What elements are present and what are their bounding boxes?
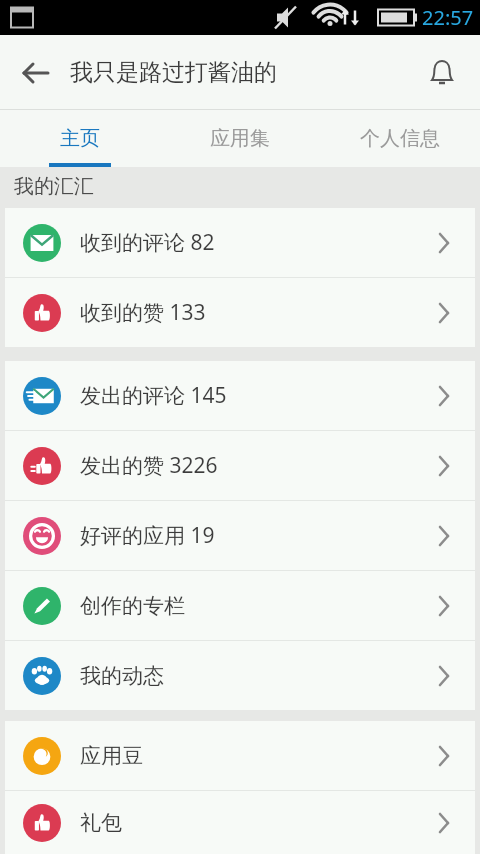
staticText: 22:57 <box>422 4 474 31</box>
staticText: 我只是路过打酱油的 <box>70 58 277 87</box>
staticText: 礼包 <box>80 810 431 836</box>
staticText: 发出的赞 3226 <box>80 451 431 480</box>
staticText: 应用豆 <box>80 743 431 769</box>
button[interactable]: 收到的评论 82 <box>5 208 475 277</box>
staticText: 收到的赞 133 <box>80 298 431 327</box>
staticText: 发出的评论 145 <box>80 381 431 410</box>
staticText: 创作的专栏 <box>80 593 431 619</box>
button[interactable]: 收到的赞 133 <box>5 278 475 347</box>
staticText: 个人信息 <box>360 126 440 151</box>
button[interactable]: 创作的专栏 <box>5 571 475 640</box>
staticText: 好评的应用 19 <box>80 521 431 550</box>
button[interactable]: 应用集 <box>160 110 320 167</box>
button[interactable]: 发出的评论 145 <box>5 361 475 430</box>
button[interactable]: 主页 <box>0 110 160 167</box>
button[interactable]: 我的动态 <box>5 641 475 710</box>
button[interactable]: 应用豆 <box>5 721 475 790</box>
staticText: 收到的评论 82 <box>80 228 431 257</box>
staticText: 我的汇汇 <box>14 174 94 199</box>
button[interactable]: 好评的应用 19 <box>5 501 475 570</box>
staticText: 应用集 <box>210 126 270 151</box>
button[interactable]: 礼包 <box>5 791 475 854</box>
staticText: 主页 <box>60 126 100 151</box>
button[interactable]: Back <box>10 47 62 99</box>
button[interactable]: 发出的赞 3226 <box>5 431 475 500</box>
button[interactable]: Notifications <box>418 49 466 97</box>
staticText: 我的动态 <box>80 663 431 689</box>
button[interactable]: 个人信息 <box>320 110 480 167</box>
